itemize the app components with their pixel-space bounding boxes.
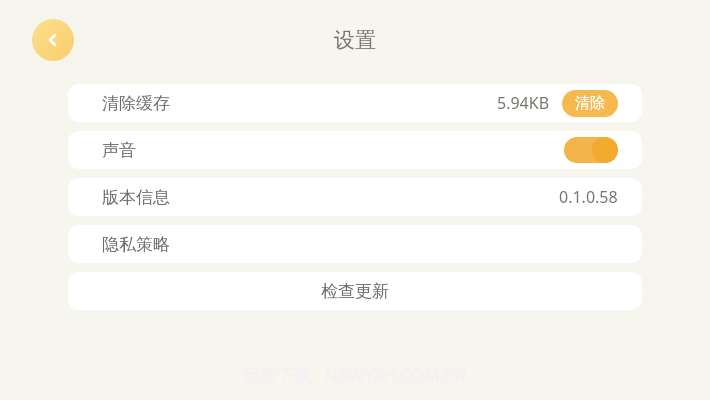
button[interactable]: 清除 bbox=[562, 90, 618, 117]
button[interactable]: 版本信息 bbox=[68, 178, 642, 216]
button[interactable]: 声音开关 bbox=[564, 137, 618, 163]
button[interactable]: 清除缓存 bbox=[68, 84, 642, 122]
staticText: 清除 bbox=[575, 94, 605, 113]
staticText: 版本信息 bbox=[102, 187, 170, 208]
staticText: 0.1.0.58 bbox=[559, 186, 618, 208]
button[interactable]: 检查更新 bbox=[68, 272, 642, 310]
button[interactable]: 隐私策略 bbox=[68, 225, 642, 263]
staticText: 清除缓存 bbox=[102, 93, 170, 114]
staticText: 设置 bbox=[334, 27, 376, 53]
button[interactable]: 声音 bbox=[68, 131, 642, 169]
button[interactable]: 返回 bbox=[32, 19, 74, 61]
staticText: 声音 bbox=[102, 140, 136, 161]
staticText: 检查更新 bbox=[321, 281, 389, 302]
staticText: 5.94KB bbox=[497, 92, 550, 114]
staticText: 隐私策略 bbox=[102, 234, 170, 255]
